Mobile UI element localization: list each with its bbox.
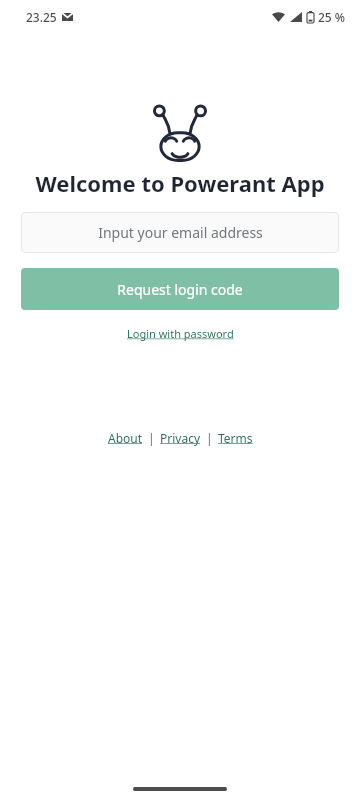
button[interactable]: Terms	[216, 428, 255, 448]
button[interactable]: Privacy	[158, 428, 203, 448]
staticText: Request login code	[117, 280, 243, 299]
button[interactable]: About	[106, 428, 145, 448]
staticText: Input your email address	[98, 223, 263, 242]
staticText: Terms	[218, 430, 253, 446]
staticText: About	[108, 430, 143, 446]
button[interactable]: Login with password	[121, 323, 240, 344]
button[interactable]: Request login code	[21, 268, 339, 310]
staticText: 23.25	[26, 9, 57, 25]
staticText: Privacy	[160, 430, 201, 446]
staticText: Welcome to Powerant App	[35, 168, 325, 198]
other: Powerant logo	[151, 104, 209, 164]
staticText: |	[203, 430, 216, 446]
staticText: Login with password	[127, 326, 234, 341]
staticText: 25 %	[318, 9, 346, 25]
staticText: |	[145, 430, 158, 446]
button[interactable]: Input your email address	[21, 212, 339, 253]
